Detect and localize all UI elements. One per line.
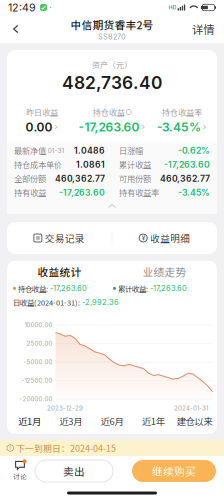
staticText: 最新净值 xyxy=(14,144,46,156)
staticText: 持仓成本单价 xyxy=(14,158,62,170)
button[interactable]: 交易记录 xyxy=(7,226,112,250)
staticText: 持有收益率 xyxy=(119,186,159,198)
staticText: 12:49 xyxy=(8,1,36,14)
staticText: 业绩走势 xyxy=(142,264,186,279)
staticText: 资产（元） xyxy=(92,59,132,70)
staticText: 持有收益 xyxy=(14,186,46,198)
button[interactable]: 昨日收益 xyxy=(7,106,77,134)
staticText: 0.00 xyxy=(25,120,52,134)
staticText: -3.45% xyxy=(178,187,210,198)
staticText: ¥ xyxy=(142,234,145,242)
button[interactable]: 持仓收益率 xyxy=(147,106,217,134)
button[interactable]: 持仓收益 xyxy=(77,106,147,134)
staticText: 近1年 xyxy=(142,414,165,428)
staticText: -17,263.60 xyxy=(150,284,187,293)
staticText: 2024-01-31 xyxy=(174,405,208,412)
staticText: -2,992.36 xyxy=(80,298,119,307)
button[interactable]: 近1年 xyxy=(133,413,174,429)
staticText: 2500.00 xyxy=(26,340,52,347)
staticText: 卖出 xyxy=(63,463,85,479)
button[interactable]: 近3月 xyxy=(50,413,91,429)
staticText: -3.45% xyxy=(157,120,201,134)
staticText: 建仓以来 xyxy=(176,414,212,428)
button[interactable]: 近1月 xyxy=(9,413,50,429)
button[interactable]: 返回 xyxy=(3,16,29,42)
staticText: 持仓收益率 xyxy=(162,106,202,118)
staticText: 近6月 xyxy=(100,414,123,428)
staticText: -17,263.60 xyxy=(50,284,87,293)
staticText: 10000.00 xyxy=(24,321,52,329)
staticText: 下一到期日：2024-04-15 xyxy=(16,442,116,454)
button[interactable]: 继续购买 xyxy=(132,460,216,482)
staticText: 日收益(2024-01-31): xyxy=(13,297,80,308)
staticText: 继续购买 xyxy=(152,463,196,479)
button[interactable]: ¥ xyxy=(112,226,217,250)
staticText: 日涨幅 xyxy=(119,144,143,156)
staticText: -0.62% xyxy=(178,145,210,156)
staticText: 累计收益 xyxy=(119,158,151,170)
staticText: -20000.00 xyxy=(19,395,52,403)
button[interactable]: 详情 xyxy=(185,16,221,42)
button[interactable]: 讨论 xyxy=(6,458,34,484)
staticText: 可用份额 xyxy=(119,172,151,184)
staticText: HD xyxy=(169,4,177,10)
staticText: 1.0486 xyxy=(74,145,105,156)
staticText: 持仓收益: xyxy=(18,283,48,294)
staticText: 1.0861 xyxy=(76,159,105,170)
staticText: 460,362.77 xyxy=(55,173,105,184)
button[interactable]: 业绩走势 xyxy=(112,263,217,280)
staticText: 460,362.77 xyxy=(160,173,210,184)
staticText: -5000.00 xyxy=(23,358,52,366)
staticText: 近3月 xyxy=(59,414,82,428)
staticText: 昨日收益 xyxy=(26,106,58,118)
staticText: 近1月 xyxy=(18,414,41,428)
staticText: 收益统计 xyxy=(37,264,81,279)
staticText: 中信期货睿丰2号 xyxy=(70,17,153,32)
staticText: 全部份额 xyxy=(14,172,46,184)
staticText: -17,263.60 xyxy=(78,120,139,134)
staticText: 收益明细 xyxy=(150,231,190,245)
staticText: -17,263.60 xyxy=(59,187,105,198)
staticText: -17,263.60 xyxy=(164,159,210,170)
staticText: 讨论 xyxy=(13,472,27,481)
staticText: ! xyxy=(9,444,11,452)
staticText: 持仓收益 xyxy=(93,106,125,118)
button[interactable]: 近6月 xyxy=(91,413,133,429)
staticText: 详情 xyxy=(192,21,214,37)
staticText: 交易记录 xyxy=(45,231,85,245)
staticText: 2023-12-29 xyxy=(47,405,83,412)
staticText: 01-31 xyxy=(47,146,64,155)
staticText: 累计收益: xyxy=(118,283,148,294)
staticText: SS8270 xyxy=(98,32,126,41)
button[interactable]: 建仓以来 xyxy=(174,413,215,429)
button[interactable]: 收益统计 xyxy=(7,263,112,280)
staticText: -12500.00 xyxy=(21,377,52,384)
staticText: 482,736.40 xyxy=(62,72,162,93)
button[interactable]: 卖出 xyxy=(35,460,113,482)
